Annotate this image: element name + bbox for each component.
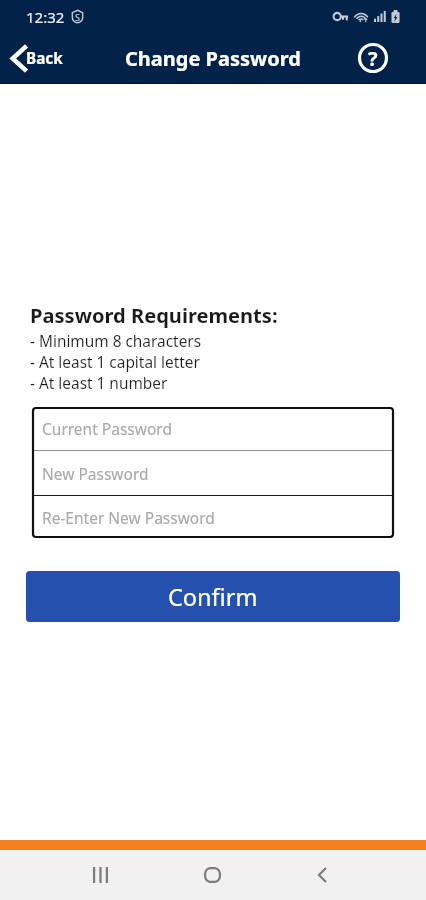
button[interactable]: New Password [32, 451, 394, 495]
button[interactable]: Back [0, 33, 75, 83]
staticText: Change Password [125, 45, 301, 72]
button[interactable]: Home [190, 853, 234, 897]
staticText: ? [368, 45, 378, 72]
staticText: - At least 1 number [30, 373, 168, 394]
staticText: S [75, 11, 80, 23]
staticText: Confirm [168, 581, 258, 613]
staticText: Current Password [42, 418, 172, 439]
staticText: New Password [42, 463, 149, 484]
button[interactable]: Re-Enter New Password [32, 496, 394, 538]
button[interactable]: Back [300, 853, 344, 897]
button[interactable]: Help [358, 43, 388, 73]
button[interactable]: Current Password [32, 407, 394, 450]
staticText: Re-Enter New Password [42, 507, 215, 528]
staticText: 12:32 [26, 7, 65, 27]
staticText: - At least 1 capital letter [30, 352, 200, 373]
button[interactable]: Confirm [26, 571, 400, 622]
button[interactable]: Recent apps [78, 853, 122, 897]
staticText: - Minimum 8 characters [30, 331, 202, 352]
staticText: Password Requirements: [30, 302, 278, 329]
staticText: Back [26, 48, 63, 69]
